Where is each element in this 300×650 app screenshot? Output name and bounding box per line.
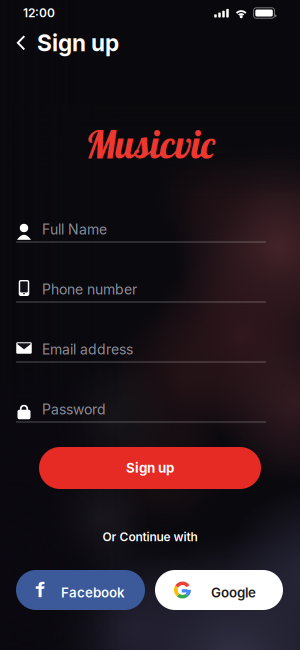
staticText: Phone number xyxy=(42,281,137,298)
staticText: Sign up xyxy=(37,29,119,57)
button[interactable]: Google xyxy=(155,570,283,610)
staticText: Full Name xyxy=(42,221,107,238)
staticText: Google xyxy=(211,584,256,601)
staticText: Musicvic xyxy=(85,120,214,168)
staticText: 12:00 xyxy=(23,6,55,20)
staticText: Sign up xyxy=(126,460,174,476)
staticText: Facebook xyxy=(61,584,125,601)
staticText: Password xyxy=(42,401,106,418)
button[interactable]: Sign up xyxy=(39,447,261,489)
button[interactable]: Facebook xyxy=(16,570,145,610)
staticText: Or Continue with xyxy=(102,530,197,544)
button[interactable]: Back xyxy=(10,30,32,56)
staticText: Email address xyxy=(42,341,133,358)
